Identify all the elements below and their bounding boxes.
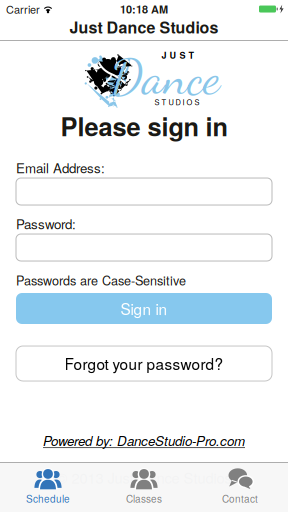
staticText: Dance: [110, 47, 219, 107]
staticText: Email Address:: [16, 158, 105, 177]
staticText: Powered by: DanceStudio-Pro.com: [43, 431, 245, 450]
button[interactable]: Schedule: [0, 463, 96, 512]
button[interactable]: Contact: [192, 463, 288, 512]
button[interactable]: Forgot your password?: [16, 346, 272, 381]
staticText: Please sign in: [60, 108, 227, 144]
staticText: 10:18 AM: [120, 1, 168, 17]
staticText: J U S T: [161, 48, 194, 61]
staticText: Classes: [126, 491, 162, 506]
staticText: S T U D I O S: [154, 97, 199, 107]
staticText: Passwords are Case-Sensitive: [16, 271, 186, 289]
staticText: Schedule: [26, 491, 70, 506]
button[interactable]: Classes: [96, 463, 192, 512]
staticText: Password:: [16, 214, 76, 233]
staticText: Forgot your password?: [64, 352, 223, 374]
staticText: Carrier: [6, 1, 40, 17]
staticText: © 2013 Just Dance Studios: [56, 467, 231, 488]
staticText: Contact: [222, 491, 258, 506]
staticText: Just Dance Studios: [69, 15, 218, 38]
staticText: Sign in: [120, 297, 167, 319]
button[interactable]: Sign in: [16, 293, 272, 324]
button[interactable]: Powered by: DanceStudio-Pro.com: [43, 431, 245, 450]
